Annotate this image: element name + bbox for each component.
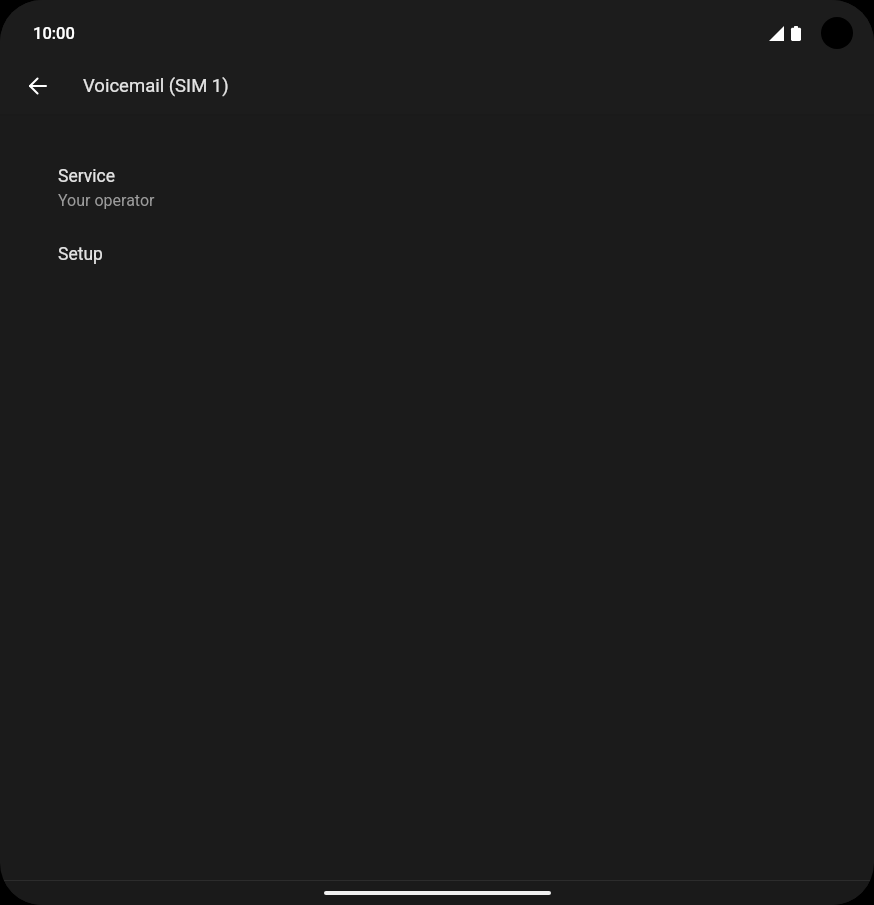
staticText: Your operator bbox=[58, 191, 155, 210]
button[interactable]: Navigate up bbox=[16, 64, 60, 108]
staticText: 10:00 bbox=[33, 24, 75, 43]
other: Battery full bbox=[791, 26, 801, 41]
other: Home gesture handle bbox=[324, 891, 551, 895]
staticText: Voicemail (SIM 1) bbox=[83, 75, 229, 97]
staticText: Setup bbox=[58, 244, 103, 265]
button[interactable]: Setup bbox=[0, 230, 874, 279]
staticText: Service bbox=[58, 166, 115, 187]
button[interactable]: Service bbox=[0, 152, 874, 230]
other: Mobile signal bbox=[769, 26, 784, 41]
